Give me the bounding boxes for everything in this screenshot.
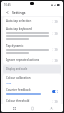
staticText: Auto-tap selection: [6, 19, 32, 23]
staticText: Settings: [12, 10, 26, 15]
button[interactable]: Colour calibration: [3, 74, 61, 86]
button[interactable]: Profile: [45, 104, 57, 112]
staticText: Colour threshold: [6, 99, 30, 103]
staticText: Display and scale: [6, 67, 28, 71]
button[interactable]: Colour threshold: [3, 97, 61, 104]
button[interactable]: Ignore repeated actions: [3, 56, 61, 64]
staticText: 10:45: [4, 3, 11, 7]
button[interactable]: Toggle on: [52, 90, 58, 93]
button[interactable]: Toggle off: [52, 59, 58, 62]
button[interactable]: Auto-tap keyboard: [3, 25, 61, 42]
staticText: Tap dynamic: [6, 44, 24, 48]
button[interactable]: Home: [8, 104, 20, 112]
button[interactable]: Toggle off: [52, 32, 58, 35]
staticText: Counter feedback: [6, 88, 31, 92]
button[interactable]: Counter feedback: [3, 86, 61, 97]
staticText: Ignore repeated actions: [6, 58, 40, 62]
staticText: Colour calibration: [6, 76, 31, 80]
button[interactable]: Tap dynamic: [3, 42, 61, 56]
staticText: Auto: [6, 81, 12, 84]
button[interactable]: Toggle off: [52, 100, 58, 103]
staticText: Auto-tap keyboard: [6, 27, 32, 31]
button[interactable]: Toggle off: [52, 20, 58, 23]
button[interactable]: Back: [4, 9, 10, 15]
button[interactable]: Documents: [26, 104, 38, 112]
button[interactable]: Auto-tap selection: [3, 17, 61, 25]
button[interactable]: Toggle off: [52, 48, 58, 51]
